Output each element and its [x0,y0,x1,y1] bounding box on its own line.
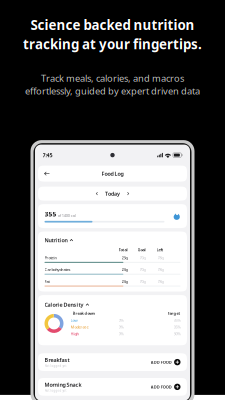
staticText: Left [156,247,163,252]
staticText: High [70,331,79,336]
staticText: Total [118,247,127,252]
staticText: Morning Snack [44,381,81,388]
staticText: 78g [157,279,163,284]
staticText: 78g [157,267,163,272]
staticText: Carbohydrates [44,267,70,272]
staticText: effortlessly, guided by expert driven da… [25,85,200,97]
staticText: 355 [44,210,56,218]
staticText: 7:45 [42,152,52,159]
staticText: of 1400 cal [58,213,76,218]
staticText: Track meals, calories, and macros [41,72,184,84]
staticText: 0% [118,324,123,329]
staticText: tracking at your fingertips. [23,35,202,53]
staticText: Science backed nutrition [30,16,194,34]
staticText: Nutrition [44,237,67,244]
staticText: 23g [121,267,127,272]
staticText: Fat [44,279,49,284]
button[interactable]: Breakfast [38,353,187,371]
staticText: Not logged yet [44,389,66,392]
button[interactable]: Nutrition [44,237,180,244]
staticText: Moderate [70,324,88,329]
staticText: 70g [139,255,145,260]
staticText: Breakfast [44,356,69,364]
staticText: Today [105,190,120,197]
staticText: 0% [118,331,123,336]
staticText: 70g [139,267,145,272]
staticText: 78g [157,255,163,260]
button[interactable]: Back [41,168,53,179]
button[interactable]: Calorie Density [44,301,180,308]
staticText: 23g [121,279,127,284]
staticText: 30% [173,331,180,336]
staticText: Break down [72,311,95,316]
button[interactable]: Previous day [93,189,100,198]
staticText: Goal [137,247,145,252]
staticText: Not logged yet [44,364,66,368]
staticText: Protein [44,255,56,260]
staticText: 23g [121,255,127,260]
staticText: Low [70,317,77,323]
staticText: ADD FOOD [151,384,172,389]
staticText: 70g [139,279,145,284]
staticText: 35% [173,317,180,323]
button[interactable]: Morning Snack [38,378,187,396]
staticText: ADD FOOD [151,359,172,365]
staticText: 35% [173,324,180,329]
staticText: Calorie Density [44,301,83,308]
staticText: Target [167,311,180,316]
staticText: 0% [118,317,123,323]
button[interactable]: Next day [124,189,132,198]
staticText: Food Log [101,170,123,177]
